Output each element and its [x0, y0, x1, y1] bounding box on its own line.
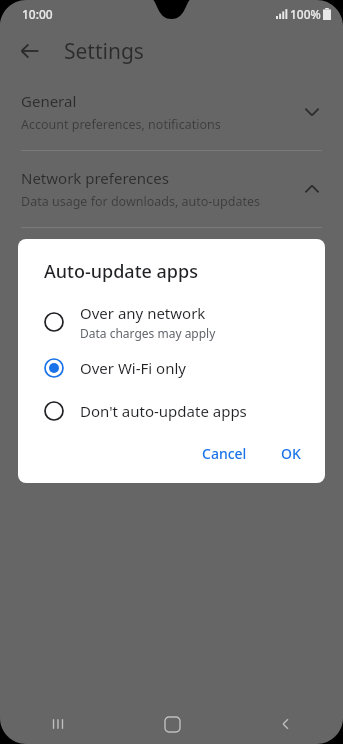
button[interactable]: Recents	[0, 704, 115, 744]
staticText: Family	[21, 322, 67, 342]
button[interactable]: Back	[10, 31, 50, 71]
staticText: Data usage for downloads, auto-updates	[21, 193, 261, 210]
staticText: Account preferences, notifications	[21, 116, 221, 133]
staticText: 10:00	[22, 6, 53, 22]
staticText: Don't auto-update apps	[80, 401, 247, 421]
staticText: OK	[281, 444, 301, 463]
staticText: Settings	[64, 37, 144, 66]
button[interactable]: Over any network	[18, 298, 325, 346]
staticText: Authentication	[21, 245, 125, 265]
staticText: Cancel	[202, 444, 247, 463]
button[interactable]: Cancel	[194, 438, 255, 469]
staticText: Over Wi-Fi only	[80, 358, 186, 378]
staticText: Network preferences	[21, 168, 169, 188]
button[interactable]: OK	[273, 438, 309, 469]
staticText: 100%	[290, 6, 321, 22]
button[interactable]: Family	[0, 305, 343, 381]
button[interactable]: General	[0, 74, 343, 150]
button[interactable]: About	[0, 382, 343, 458]
staticText: Parental control, parent guide	[21, 347, 197, 364]
button[interactable]: Back	[229, 704, 343, 744]
staticText: General	[21, 91, 77, 111]
button[interactable]: Don't auto-update apps	[18, 389, 325, 432]
button[interactable]: Home	[115, 704, 229, 744]
button[interactable]: Authentication	[0, 228, 343, 304]
staticText: Auto-update apps	[44, 259, 198, 284]
button[interactable]: Over Wi-Fi only	[18, 346, 325, 389]
staticText: About	[21, 399, 64, 419]
button[interactable]: Network preferences	[0, 151, 343, 227]
staticText: Fingerprint, purchase authentication	[21, 270, 237, 287]
staticText: Over any network	[80, 303, 206, 323]
staticText: Data charges may apply	[80, 325, 216, 341]
